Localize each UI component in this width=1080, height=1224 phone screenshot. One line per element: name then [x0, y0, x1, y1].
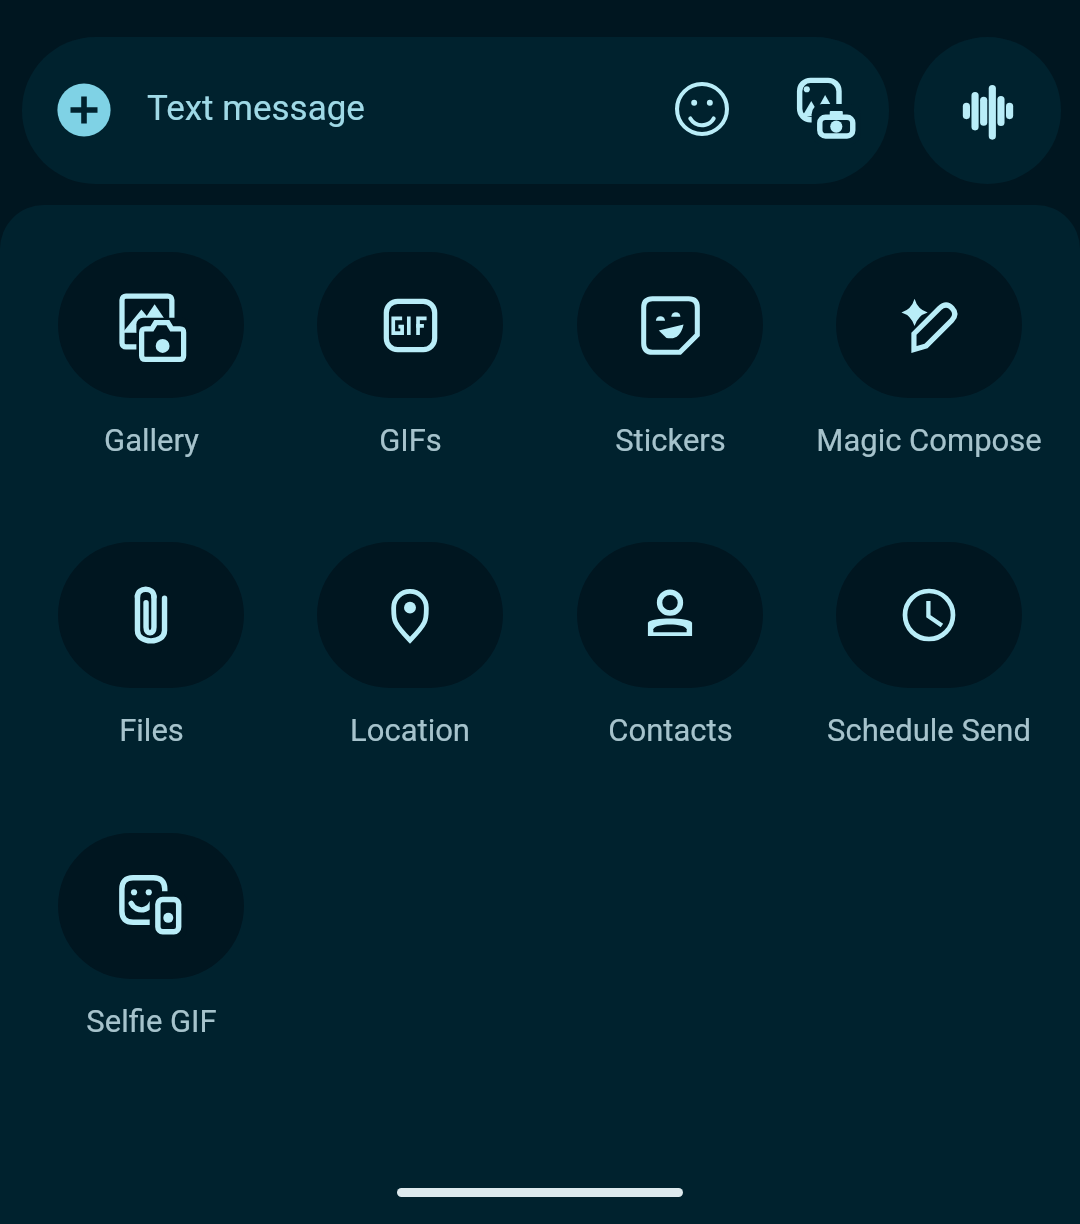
- button[interactable]: Gallery: [779, 61, 875, 157]
- button[interactable]: Stickers: [577, 252, 763, 398]
- button[interactable]: GIFs: [317, 252, 503, 398]
- staticText: Selfie GIF: [86, 1003, 217, 1039]
- button[interactable]: Schedule Send: [836, 542, 1022, 688]
- staticText: Files: [119, 712, 184, 748]
- staticText: Magic Compose: [816, 422, 1042, 458]
- button[interactable]: Gallery: [58, 252, 244, 398]
- button[interactable]: Selfie GIF: [58, 833, 244, 979]
- button[interactable]: Emoji: [654, 61, 750, 157]
- button[interactable]: Add attachment: [22, 37, 889, 184]
- staticText: Location: [350, 712, 470, 748]
- button[interactable]: Location: [317, 542, 503, 688]
- button[interactable]: Add attachment: [36, 62, 132, 158]
- staticText: Gallery: [104, 422, 199, 458]
- button[interactable]: Files: [58, 542, 244, 688]
- staticText: Contacts: [608, 712, 733, 748]
- staticText: GIFs: [379, 422, 442, 458]
- button[interactable]: Contacts: [577, 542, 763, 688]
- staticText: Stickers: [615, 422, 726, 458]
- staticText: Schedule Send: [827, 712, 1031, 748]
- button[interactable]: Magic Compose: [836, 252, 1022, 398]
- staticText: Text message: [147, 88, 365, 184]
- button[interactable]: Voice message: [914, 37, 1061, 184]
